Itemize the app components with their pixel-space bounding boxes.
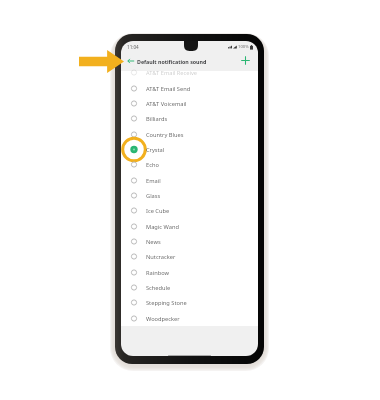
staticText: Crystal (146, 146, 165, 154)
staticText: Magic Wand (146, 223, 179, 231)
button[interactable]: Ice Cube (121, 203, 258, 218)
button[interactable]: Stepping Stone (121, 295, 258, 310)
staticText: Country Blues (146, 131, 184, 139)
button[interactable]: Woodpecker (121, 311, 258, 326)
button[interactable]: Add (238, 53, 252, 67)
staticText: Schedule (146, 284, 171, 292)
staticText: Billiards (146, 115, 168, 123)
staticText: Email (146, 177, 161, 185)
button[interactable]: Rainbow (121, 265, 258, 280)
staticText: 100% (238, 44, 249, 50)
staticText: Echo (146, 161, 159, 169)
button[interactable]: Email (121, 173, 258, 188)
button[interactable]: News (121, 234, 258, 249)
staticText: Ice Cube (146, 207, 170, 215)
staticText: 11:04 (127, 44, 139, 50)
staticText: AT&T Email Send (146, 85, 191, 93)
button[interactable]: AT&T Voicemail (121, 96, 258, 111)
staticText: Default notification sound (137, 58, 207, 65)
button[interactable]: Billiards (121, 111, 258, 126)
staticText: Woodpecker (146, 315, 180, 323)
staticText: Glass (146, 192, 161, 200)
staticText: Rainbow (146, 269, 170, 277)
staticText: Stepping Stone (146, 299, 187, 307)
button[interactable]: AT&T Email Receive (121, 65, 258, 80)
button[interactable]: Glass (121, 188, 258, 203)
button[interactable]: Nutcracker (121, 249, 258, 264)
button[interactable]: Crystal (121, 142, 258, 157)
staticText: AT&T Email Receive (146, 69, 198, 77)
staticText: Nutcracker (146, 253, 176, 261)
button[interactable]: Magic Wand (121, 219, 258, 234)
button[interactable]: Country Blues (121, 127, 258, 142)
button[interactable]: Back (123, 53, 138, 68)
staticText: News (146, 238, 161, 246)
staticText: AT&T Voicemail (146, 100, 187, 108)
button[interactable]: AT&T Email Send (121, 81, 258, 96)
button[interactable]: Schedule (121, 280, 258, 295)
button[interactable]: Echo (121, 157, 258, 172)
